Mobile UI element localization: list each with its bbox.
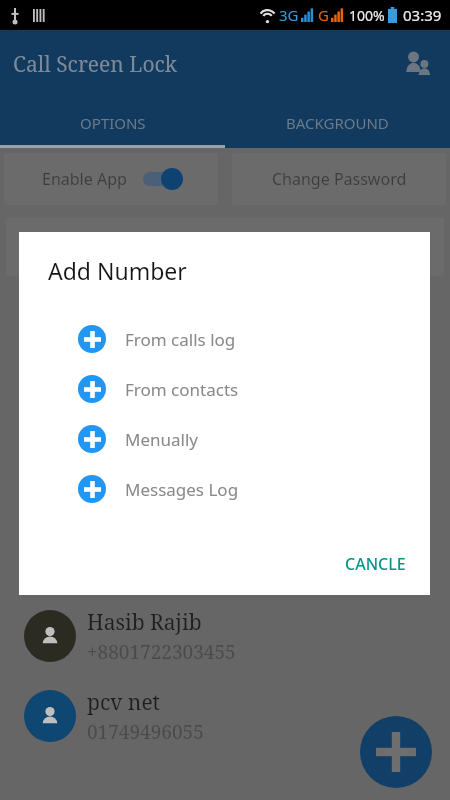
staticText: Hasib Rajib: [87, 608, 202, 637]
staticText: Messages Log: [125, 478, 239, 501]
button[interactable]: Menually: [19, 414, 430, 464]
staticText: +8801722303455: [87, 639, 236, 665]
staticText: Enable App: [42, 168, 127, 190]
staticText: From calls log: [125, 328, 236, 351]
button[interactable]: From contacts: [19, 364, 430, 414]
button[interactable]: From calls log: [19, 314, 430, 364]
button[interactable]: OPTIONS: [0, 98, 225, 148]
staticText: Add Number: [48, 255, 187, 286]
button[interactable]: Enable App: [4, 153, 218, 205]
button[interactable]: Add: [360, 716, 432, 788]
staticText: pcv net: [87, 688, 161, 717]
staticText: From contacts: [125, 378, 239, 401]
staticText: Call Screen Lock: [13, 50, 178, 79]
staticText: 01749496055: [87, 719, 204, 745]
button[interactable]: BACKGROUND: [225, 98, 450, 148]
staticText: CANCLE: [345, 553, 406, 575]
button[interactable]: pcv net: [24, 676, 450, 756]
button[interactable]: Hasib Rajib: [24, 596, 450, 676]
staticText: Change Password: [272, 168, 407, 190]
button[interactable]: Messages Log: [19, 464, 430, 514]
staticText: 3G: [279, 5, 299, 25]
staticText: G: [318, 5, 329, 25]
staticText: Menually: [125, 428, 198, 451]
staticText: 03:39: [403, 5, 442, 25]
button[interactable]: Change Password: [232, 153, 446, 205]
button[interactable]: Contacts: [398, 44, 438, 84]
staticText: 100%: [349, 6, 385, 25]
button[interactable]: CANCLE: [331, 545, 420, 583]
staticText: OPTIONS: [80, 113, 146, 133]
staticText: BACKGROUND: [286, 113, 389, 133]
